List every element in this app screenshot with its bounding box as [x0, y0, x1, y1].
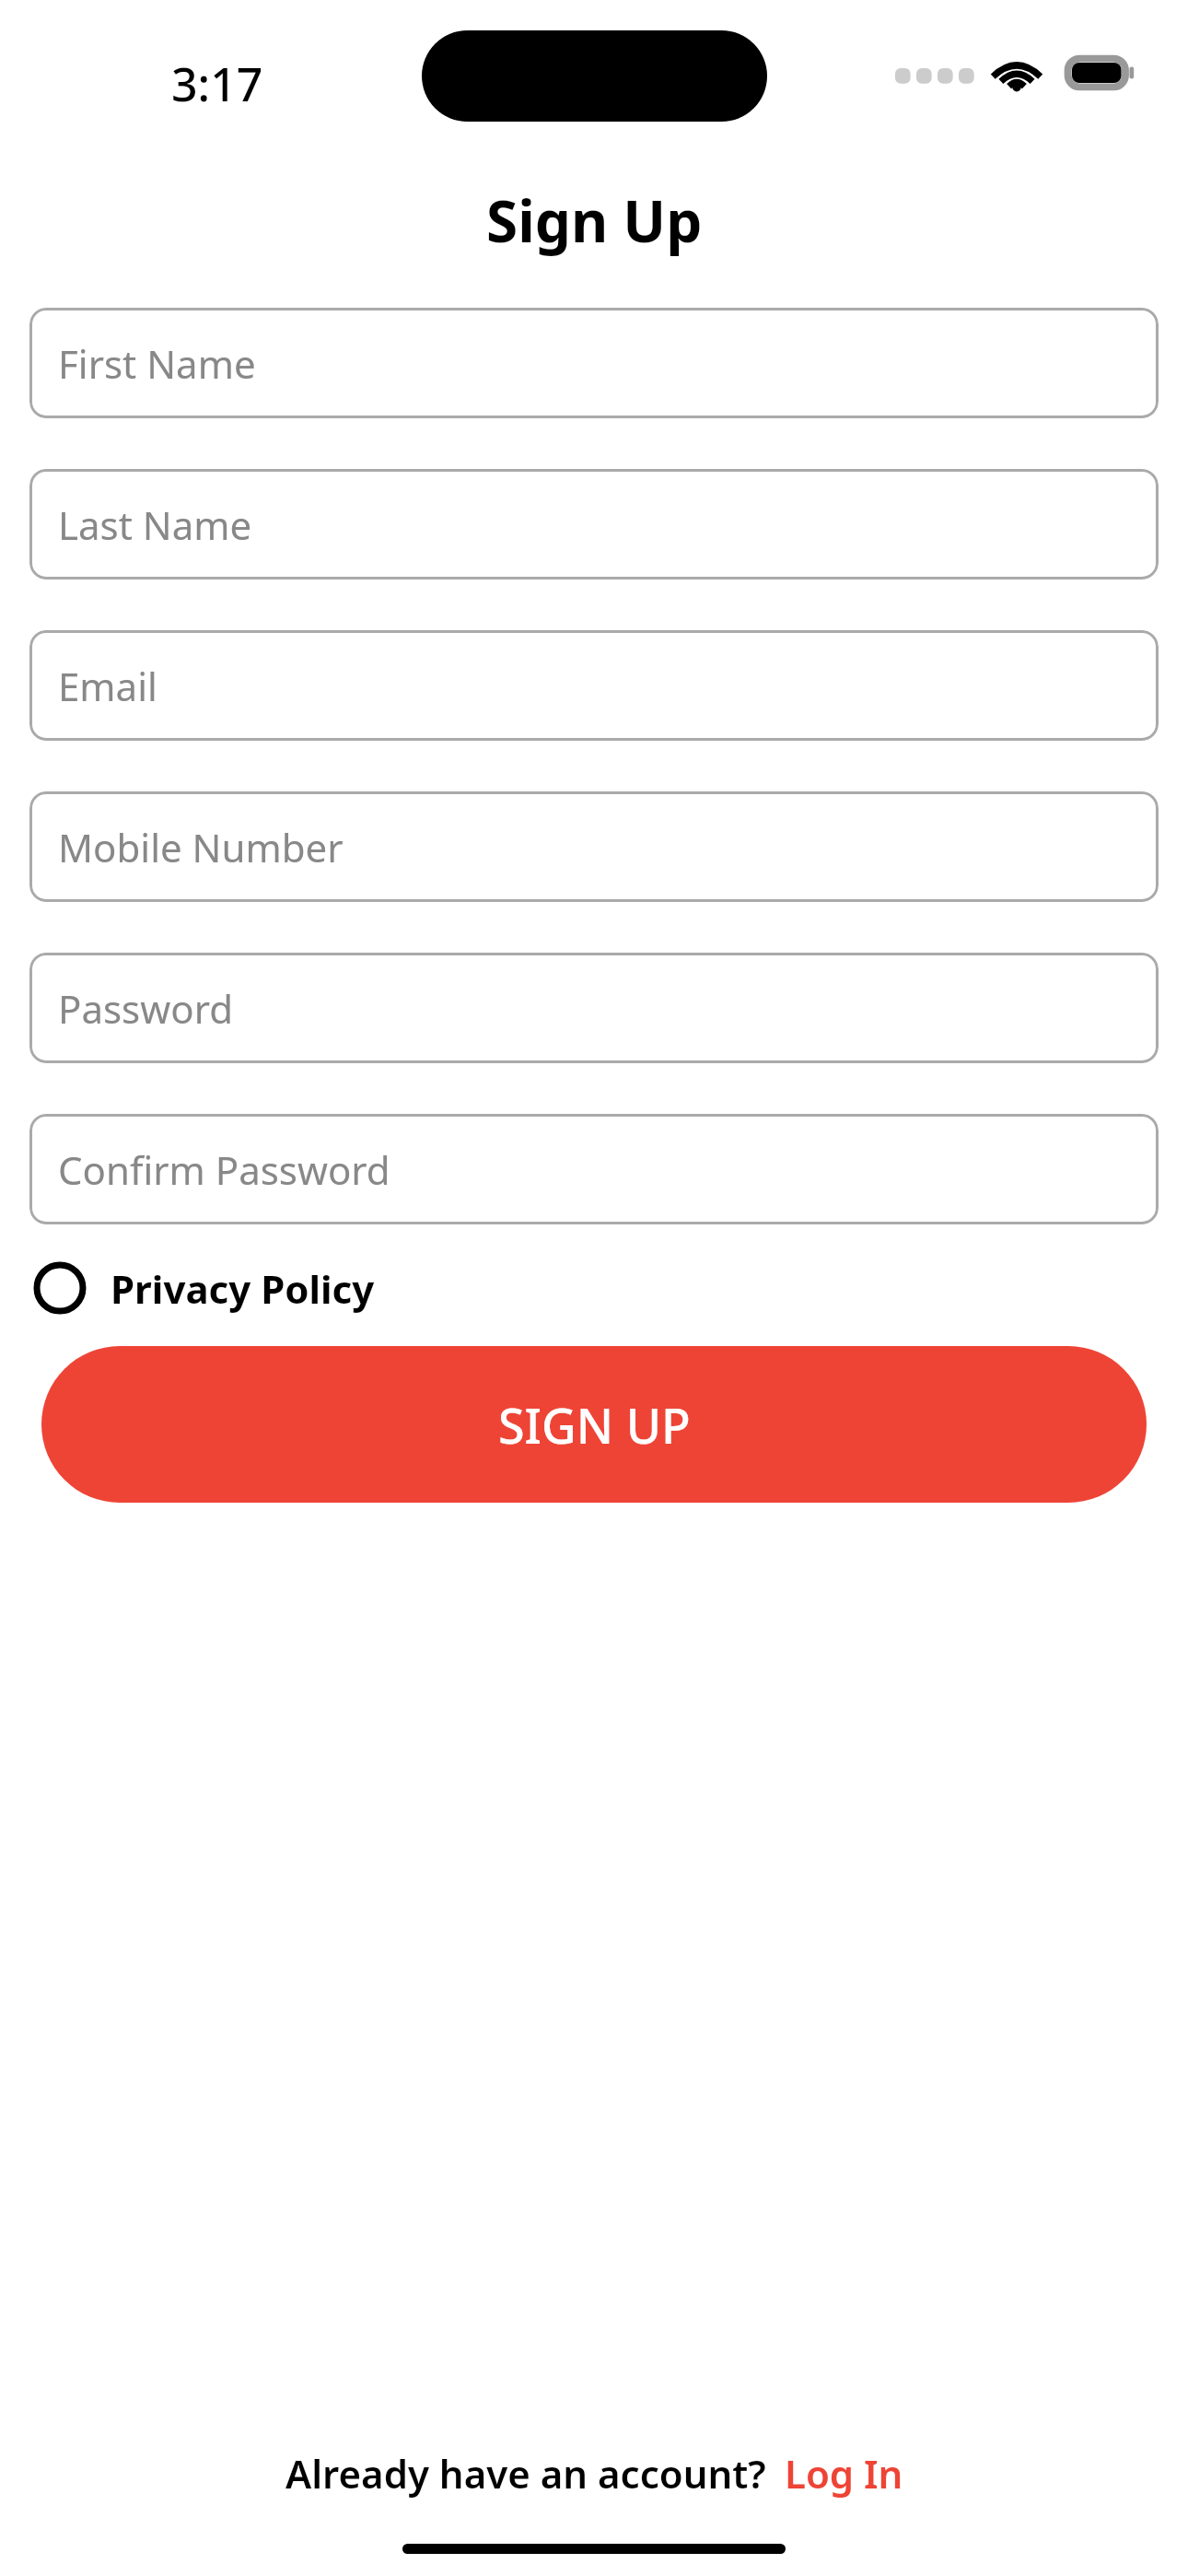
staticText: Confirm Password [58, 1143, 390, 1196]
staticText: Email [58, 660, 157, 712]
staticText: Already have an account? [285, 2447, 766, 2500]
staticText: Log In [785, 2447, 903, 2500]
other: Accept privacy policy [33, 1261, 87, 1315]
button[interactable]: Last Name [29, 469, 1159, 580]
button[interactable]: SIGN UP [41, 1346, 1147, 1503]
button[interactable]: Accept privacy policy [33, 1254, 393, 1322]
staticText: First Name [58, 337, 256, 390]
button[interactable]: Email [29, 630, 1159, 741]
button[interactable]: Password [29, 953, 1159, 1063]
button[interactable]: Log In [785, 2447, 903, 2500]
staticText: Mobile Number [58, 821, 344, 873]
button[interactable]: Mobile Number [29, 791, 1159, 902]
staticText: SIGN UP [498, 1392, 691, 1458]
button[interactable]: First Name [29, 308, 1159, 418]
staticText: Sign Up [486, 181, 703, 259]
staticText: Last Name [58, 498, 252, 551]
staticText: Privacy Policy [111, 1262, 375, 1315]
staticText: 3:17 [171, 53, 263, 115]
staticText: Password [58, 982, 233, 1035]
button[interactable]: Confirm Password [29, 1114, 1159, 1224]
